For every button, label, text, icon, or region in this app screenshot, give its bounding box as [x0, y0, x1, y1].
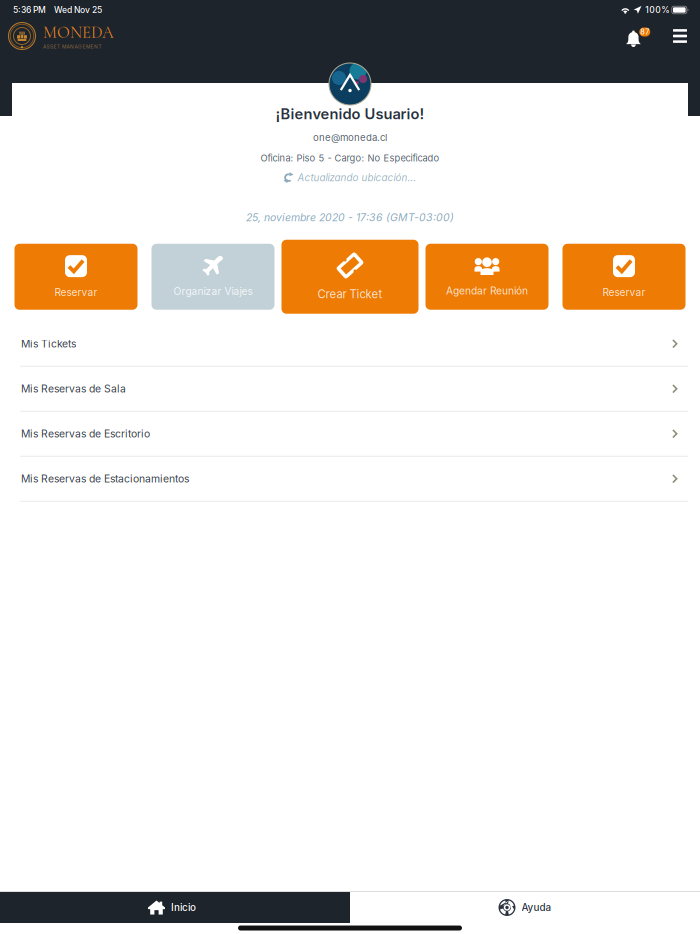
staticText: MONEDA [43, 22, 114, 43]
button[interactable]: Mis Reservas de Sala [0, 367, 700, 412]
staticText: 5:36 PM [13, 5, 46, 15]
staticText: Mis Reservas de Estacionamientos [21, 472, 189, 485]
button[interactable]: Mis Reservas de Escritorio [0, 412, 700, 457]
button[interactable]: Organizar Viajes [151, 244, 274, 310]
button[interactable]: Ayuda [350, 892, 700, 923]
button[interactable]: Mis Tickets [0, 322, 700, 367]
staticText: Reservar [54, 286, 97, 298]
staticText: Agendar Reunión [446, 285, 528, 297]
staticText: Reservar [602, 286, 645, 298]
staticText: 87 [640, 28, 649, 36]
staticText: Actualizando ubicación... [297, 172, 416, 184]
staticText: Inicio [171, 901, 196, 913]
staticText: ¡Bienvenido Usuario! [275, 105, 424, 123]
button[interactable]: Menú [666, 22, 694, 50]
staticText: Organizar Viajes [173, 285, 252, 297]
staticText: Mis Reservas de Sala [21, 382, 126, 395]
button[interactable]: Inicio [0, 892, 350, 923]
staticText: Mis Reservas de Escritorio [21, 427, 150, 440]
button[interactable]: Mis Reservas de Estacionamientos [0, 457, 700, 502]
staticText: ASSET MANAGEMENT [43, 44, 101, 50]
staticText: one@moneda.cl [313, 132, 387, 143]
staticText: 100% [645, 5, 669, 15]
button[interactable]: Crear Ticket [281, 240, 418, 314]
button[interactable]: MONEDA [0, 18, 114, 54]
button[interactable]: Reservar [14, 244, 137, 310]
button[interactable]: Agendar Reunión [425, 244, 548, 310]
button[interactable]: Reservar [562, 244, 685, 310]
staticText: 25, noviembre 2020 - 17:36 (GMT-03:00) [246, 211, 454, 224]
button[interactable]: Notificaciones [625, 21, 651, 50]
staticText: Oficina: Piso 5 - Cargo: No Especificado [260, 152, 439, 164]
staticText: Mis Tickets [21, 337, 76, 350]
staticText: Wed Nov 25 [54, 5, 102, 15]
staticText: Crear Ticket [317, 287, 382, 301]
staticText: Ayuda [521, 901, 551, 913]
